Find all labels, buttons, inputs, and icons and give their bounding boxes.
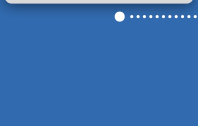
button[interactable]: Page 11 — [187, 15, 190, 18]
button[interactable]: Page 8 — [168, 15, 171, 18]
button[interactable]: Page 10 — [181, 15, 184, 18]
button[interactable]: Page 1 of 14 — [115, 12, 125, 22]
button[interactable]: Page 2 — [130, 15, 133, 18]
button[interactable]: Page 12 — [194, 15, 197, 18]
button[interactable]: Page 6 — [156, 15, 159, 18]
button[interactable]: Page 5 — [149, 15, 152, 18]
button[interactable]: Page 9 — [175, 15, 178, 18]
button[interactable]: Page 7 — [162, 15, 165, 18]
button[interactable]: Page 3 — [136, 15, 140, 18]
button[interactable]: Page 4 — [143, 15, 146, 18]
